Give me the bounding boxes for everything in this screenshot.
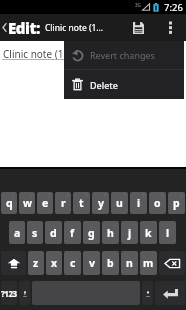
staticText: o — [154, 196, 161, 210]
staticText: b — [107, 256, 114, 270]
button[interactable]: 1 — [1, 192, 17, 214]
staticText: 7:26 — [164, 1, 183, 14]
staticText: s — [32, 226, 38, 240]
staticText: 1 — [12, 192, 15, 199]
staticText: 6 — [104, 192, 107, 199]
button[interactable]: s — [27, 221, 43, 244]
staticText: i — [137, 196, 141, 210]
button[interactable]: 5 — [73, 192, 90, 214]
staticText: g — [88, 226, 95, 240]
staticText: c — [70, 256, 76, 270]
button[interactable]: x — [46, 251, 62, 275]
button[interactable]: Shift — [1, 251, 26, 275]
button[interactable]: Delete — [64, 70, 184, 99]
button[interactable]: Backspace — [159, 251, 185, 275]
staticText: 9 — [161, 192, 164, 199]
button[interactable]: Enter — [155, 281, 185, 305]
staticText: t — [79, 196, 84, 210]
staticText: m — [143, 256, 154, 270]
staticText: 7 — [123, 192, 126, 199]
staticText: q — [6, 196, 13, 210]
button[interactable]: ?123 — [1, 281, 17, 305]
button[interactable]: v — [83, 251, 100, 275]
staticText: a — [14, 226, 21, 240]
staticText: z — [33, 256, 39, 270]
button[interactable]: k — [140, 221, 157, 244]
staticText: Clinic note (1… — [45, 22, 104, 34]
staticText: 4 — [66, 192, 69, 199]
button[interactable]: Up — [0, 14, 42, 41]
staticText: f — [70, 226, 75, 240]
staticText: Revert changes — [90, 49, 155, 61]
staticText: h — [107, 226, 114, 240]
staticText: k — [145, 226, 152, 240]
button[interactable]: Comma — [19, 281, 30, 305]
button[interactable]: More options — [154, 14, 186, 41]
staticText: w — [23, 196, 32, 210]
button[interactable]: z — [28, 251, 44, 275]
staticText: 5 — [85, 192, 88, 199]
button[interactable]: Save — [122, 14, 154, 41]
button[interactable]: c — [64, 251, 81, 275]
button[interactable]: g — [83, 221, 100, 244]
staticText: Clinic note (1 — [3, 47, 64, 61]
staticText: u — [116, 196, 123, 210]
button[interactable]: 9 — [149, 192, 166, 214]
staticText: r — [61, 196, 66, 210]
staticText: e — [42, 196, 49, 210]
button[interactable]: 6 — [92, 192, 109, 214]
button[interactable]: m — [140, 251, 157, 275]
staticText: y — [98, 196, 104, 210]
staticText: n — [126, 256, 133, 270]
button[interactable]: 8 — [130, 192, 147, 214]
staticText: v — [89, 256, 95, 270]
staticText: ?123 — [1, 288, 17, 299]
staticText: 8 — [142, 192, 145, 199]
button[interactable]: 7 — [111, 192, 128, 214]
staticText: 3 — [48, 192, 51, 199]
button[interactable]: f — [64, 221, 81, 244]
button[interactable]: Revert changes — [64, 41, 184, 69]
button[interactable]: j — [121, 221, 138, 244]
staticText: Edit: — [8, 18, 40, 38]
staticText: l — [166, 226, 170, 240]
button[interactable]: a — [9, 221, 25, 244]
button[interactable]: d — [45, 221, 62, 244]
button[interactable]: n — [121, 251, 138, 275]
button[interactable]: 3 — [37, 192, 53, 214]
staticText: x — [51, 256, 58, 270]
staticText: Delete — [90, 79, 118, 91]
staticText: j — [128, 226, 132, 240]
button[interactable]: Period — [142, 281, 153, 305]
staticText: p — [173, 196, 180, 210]
staticText: d — [50, 226, 57, 240]
staticText: 2 — [30, 192, 33, 199]
button[interactable]: 0 — [168, 192, 185, 214]
staticText: 3G — [135, 2, 141, 8]
staticText: 0 — [180, 192, 183, 199]
button[interactable]: h — [102, 221, 119, 244]
button[interactable]: 4 — [55, 192, 71, 214]
button[interactable]: 2 — [19, 192, 35, 214]
button[interactable]: l — [159, 221, 176, 244]
button[interactable]: b — [102, 251, 119, 275]
